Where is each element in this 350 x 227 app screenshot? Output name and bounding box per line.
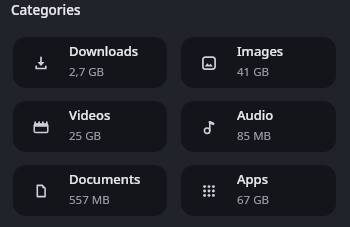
button[interactable]: Apps [181,165,336,216]
staticText: 557 MB [69,192,110,208]
staticText: Audio [237,106,274,124]
button[interactable]: Videos [13,101,167,152]
staticText: 41 GB [237,64,269,80]
staticText: Downloads [69,42,139,60]
staticText: 67 GB [237,192,269,208]
button[interactable]: Documents [13,165,167,216]
staticText: 25 GB [69,128,101,144]
staticText: Categories [11,1,81,19]
button[interactable]: Downloads [13,37,167,88]
staticText: Apps [237,170,268,188]
staticText: Documents [69,170,141,188]
button[interactable]: Audio [181,101,336,152]
staticText: 85 MB [237,128,272,144]
staticText: 2,7 GB [69,64,105,80]
staticText: Videos [69,106,111,124]
staticText: Images [237,42,284,60]
button[interactable]: Images [181,37,336,88]
